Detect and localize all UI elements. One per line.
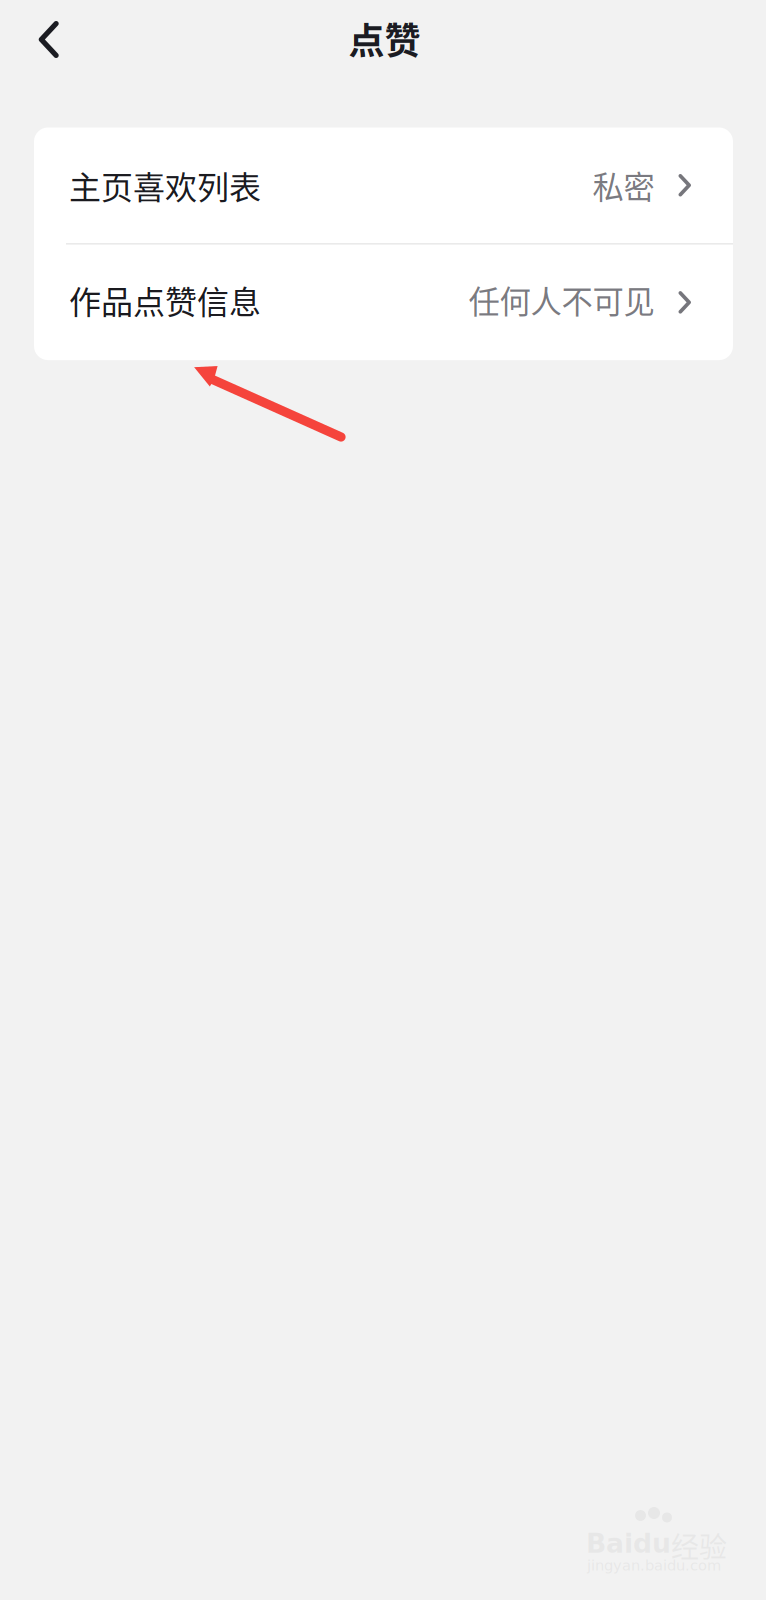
staticText: 私密: [592, 163, 654, 208]
staticText: 主页喜欢列表: [69, 162, 261, 208]
staticText: jingyan.baidu.com: [587, 1557, 721, 1574]
staticText: 任何人不可见: [468, 277, 654, 323]
button[interactable]: 作品点赞信息: [34, 245, 733, 360]
button[interactable]: 主页喜欢列表: [34, 127, 733, 243]
staticText: 经验: [671, 1525, 727, 1565]
staticText: 点赞: [348, 12, 420, 64]
staticText: Baidu: [586, 1528, 671, 1559]
button[interactable]: Back: [11, 1, 87, 77]
staticText: 作品点赞信息: [69, 277, 261, 323]
